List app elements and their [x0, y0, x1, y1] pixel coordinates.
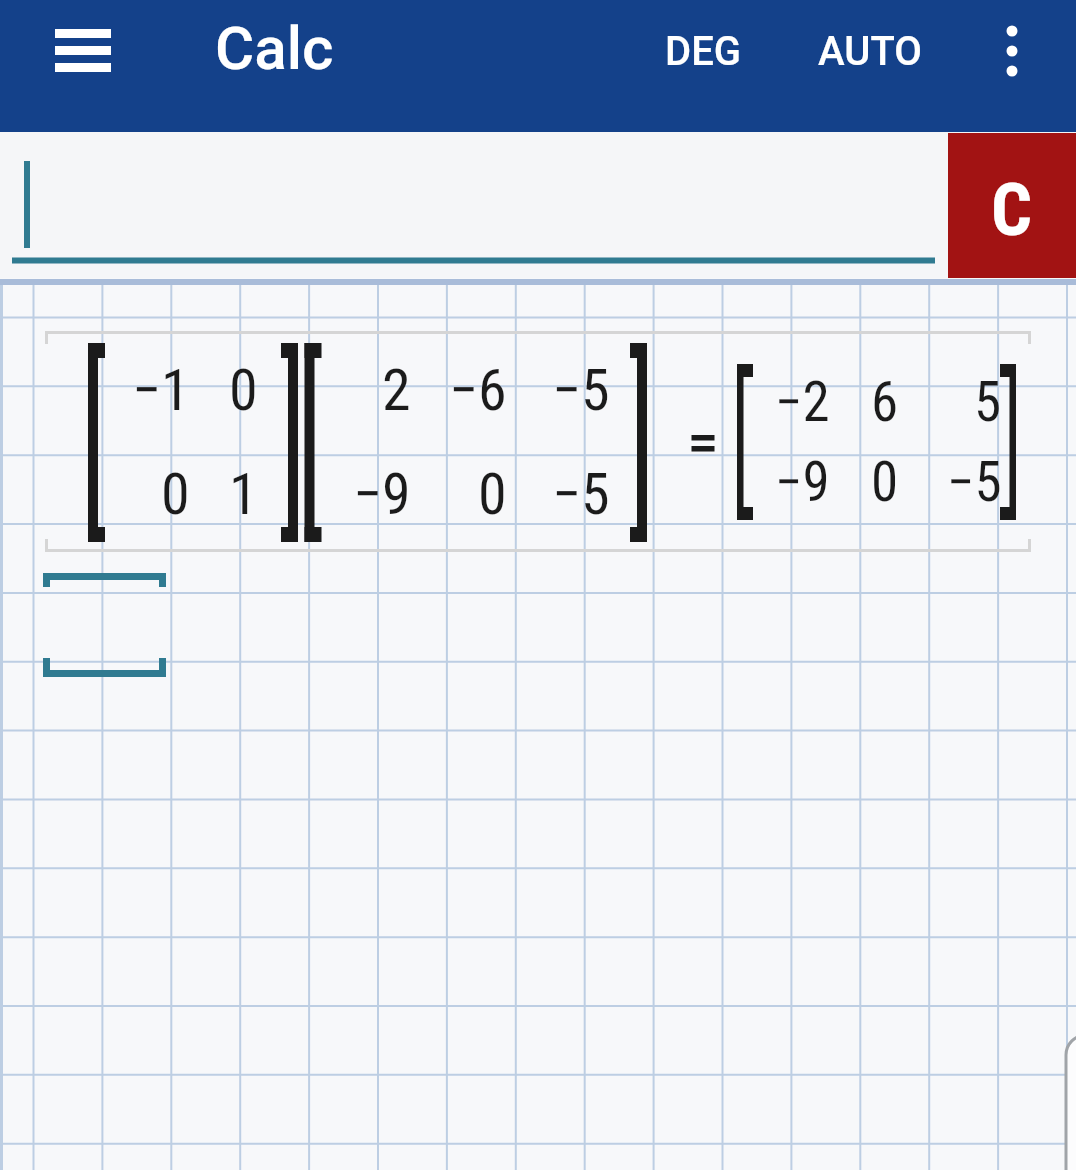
staticText: 6 [871, 370, 899, 434]
staticText: C [991, 168, 1033, 252]
button[interactable]: AUTO [798, 9, 942, 93]
staticText: 0 [161, 460, 190, 528]
staticText: 2 [382, 356, 411, 424]
staticText: 0 [229, 356, 258, 424]
staticText: AUTO [818, 28, 922, 75]
staticText: −2 [775, 370, 830, 434]
staticText: −9 [775, 450, 830, 514]
staticText: −5 [552, 356, 610, 424]
staticText: −1 [132, 356, 190, 424]
staticText: −5 [947, 450, 1002, 514]
staticText: Calc [215, 13, 334, 83]
staticText: −5 [552, 460, 610, 528]
button[interactable]: C [948, 133, 1076, 278]
staticText: 0 [478, 460, 507, 528]
staticText: −9 [353, 460, 411, 528]
staticText: DEG [665, 28, 741, 75]
staticText: −6 [449, 356, 507, 424]
button[interactable] [0, 132, 948, 278]
staticText: 0 [871, 450, 899, 514]
button[interactable] [40, 14, 126, 86]
staticText: 5 [974, 370, 1002, 434]
button[interactable] [980, 9, 1044, 93]
staticText: 1 [229, 460, 258, 528]
button[interactable]: DEG [640, 9, 766, 93]
